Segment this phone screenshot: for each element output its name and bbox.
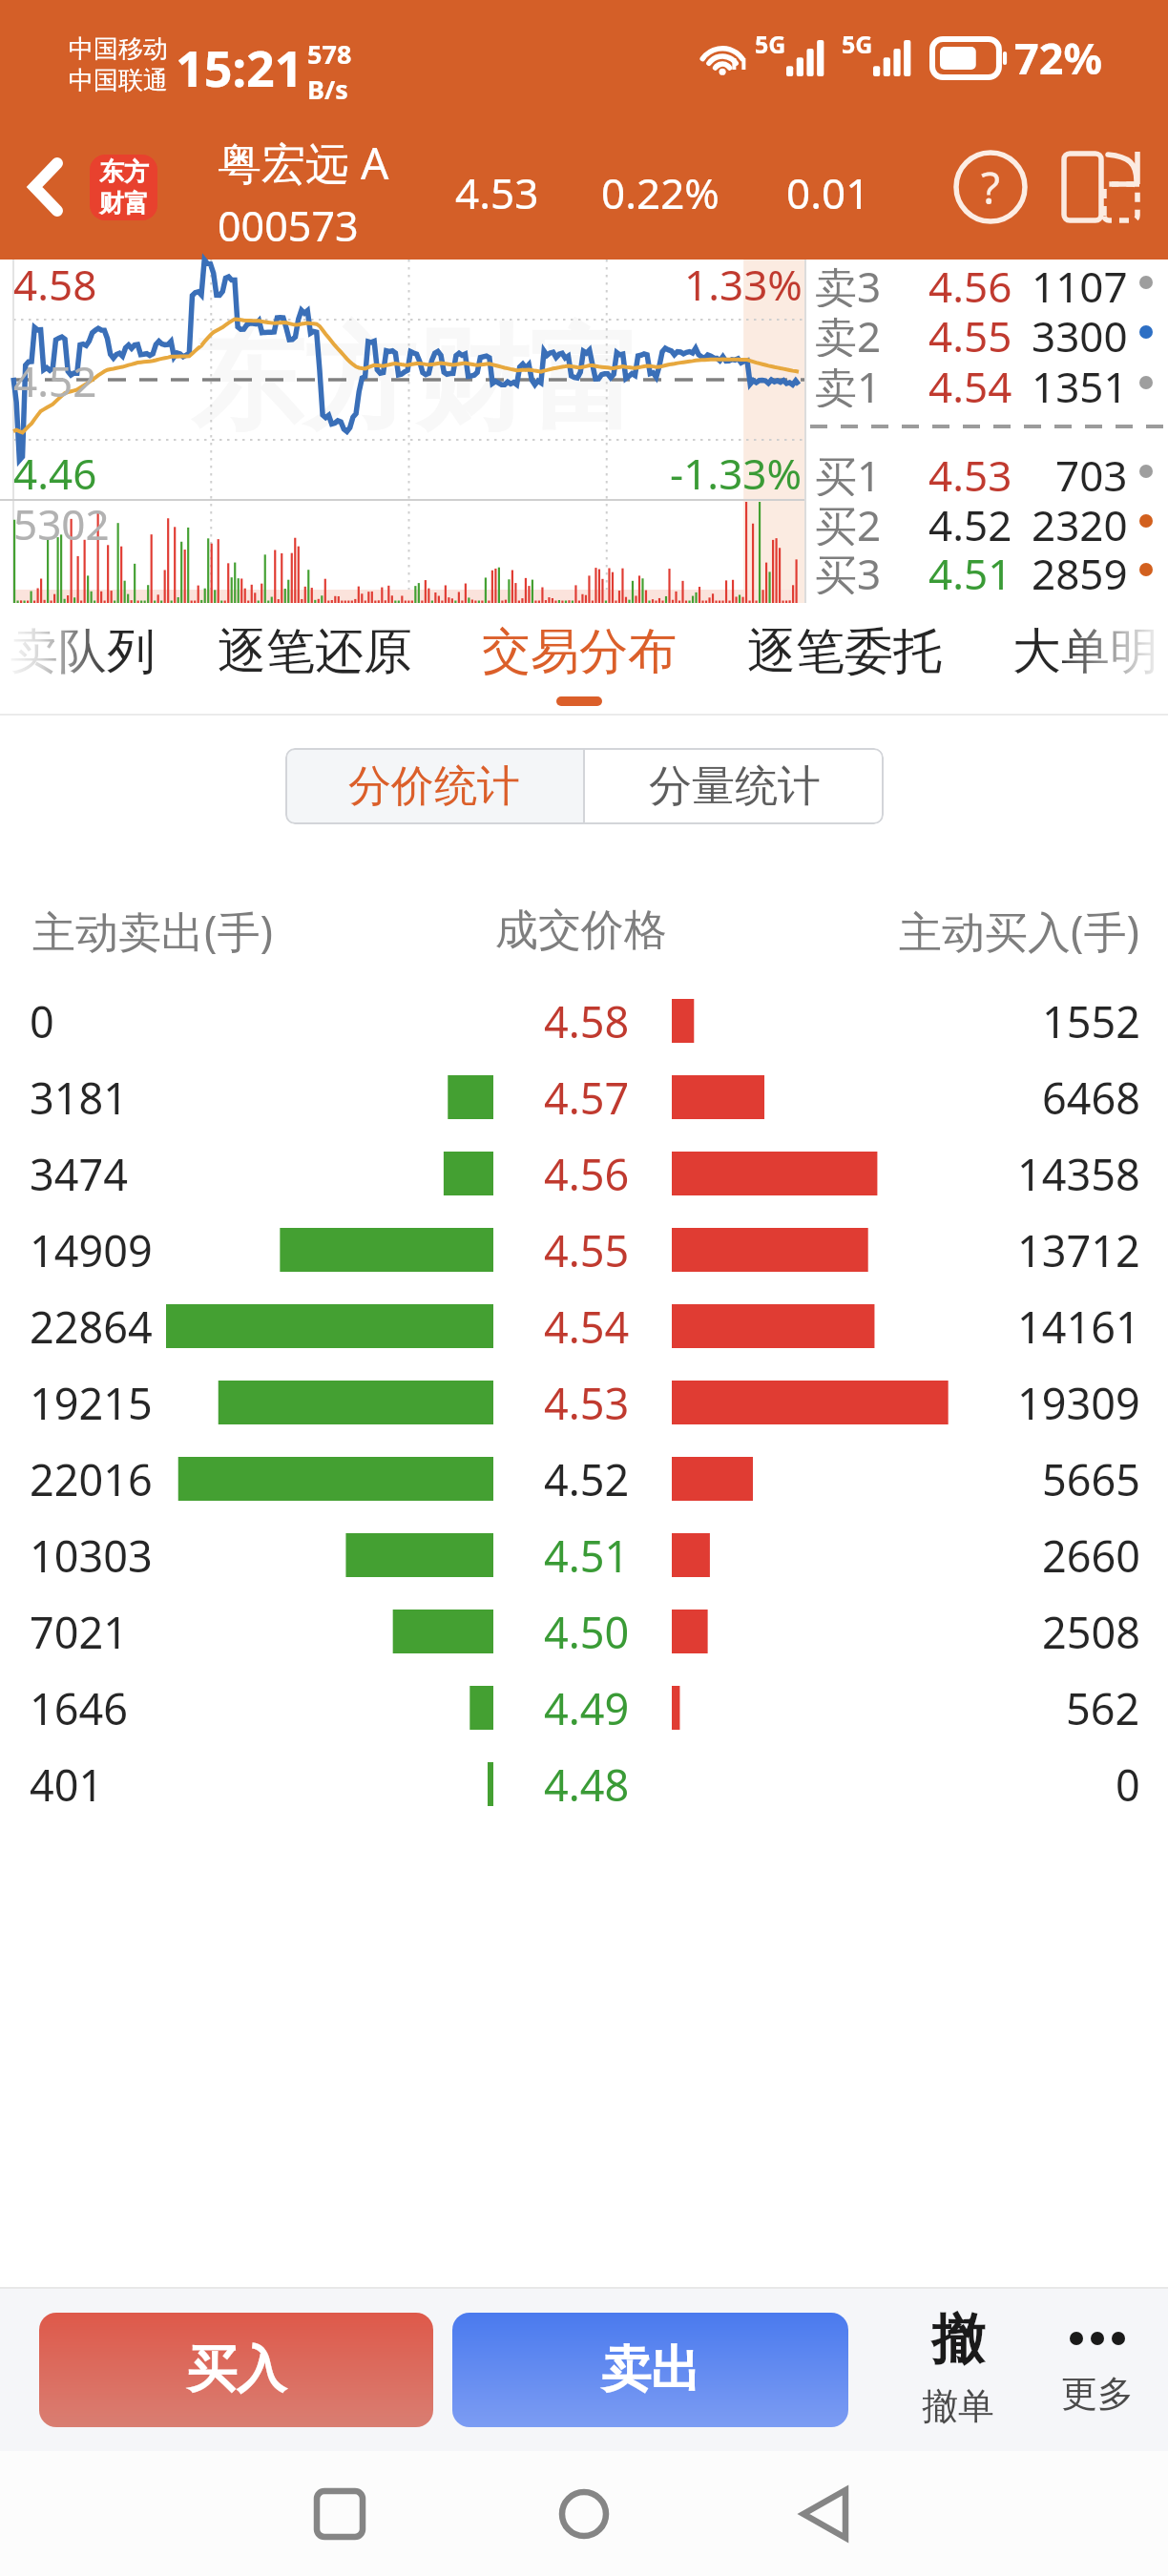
button[interactable]: 3181 — [0, 1059, 1168, 1135]
staticText: 4.53 — [544, 1374, 630, 1432]
staticText: 东方 — [99, 156, 149, 188]
staticText: 4.52 — [544, 1450, 630, 1508]
button[interactable]: 大单明 — [993, 603, 1168, 716]
button[interactable]: 卖1 — [806, 358, 1168, 407]
staticText: 1351 — [1032, 358, 1128, 407]
staticText: 4.58 — [544, 992, 630, 1050]
staticText: 5302 — [13, 495, 110, 552]
staticText: 578 — [307, 36, 352, 72]
button[interactable]: Home — [522, 2451, 646, 2576]
button[interactable]: Recents — [278, 2451, 402, 2576]
button[interactable]: 更多 — [1031, 2306, 1164, 2417]
staticText: 中国联通 — [69, 65, 168, 96]
staticText: 分量统计 — [649, 759, 821, 814]
button[interactable]: Help — [945, 114, 1036, 260]
staticText: 财富 — [99, 188, 149, 219]
button[interactable]: 401 — [0, 1746, 1168, 1822]
button[interactable]: Split screen — [1048, 114, 1157, 260]
staticText: 5G — [755, 28, 786, 60]
button[interactable]: Back — [4, 114, 88, 260]
staticText: 4.46 — [13, 445, 97, 502]
button[interactable]: 1646 — [0, 1670, 1168, 1746]
staticText: ? — [981, 157, 1000, 218]
staticText: 4.54 — [928, 358, 1012, 407]
staticText: 成交价格 — [495, 904, 667, 958]
button[interactable]: 卖2 — [806, 307, 1168, 357]
staticText: 22016 — [30, 1450, 153, 1508]
staticText: 2320 — [1032, 496, 1128, 546]
staticText: 逐笔委托 — [747, 621, 942, 682]
staticText: 卖1 — [815, 358, 882, 407]
staticText: 4.51 — [928, 545, 1012, 594]
staticText: 卖2 — [815, 307, 882, 357]
button[interactable]: 卖出 — [452, 2313, 848, 2427]
staticText: 4.50 — [544, 1603, 630, 1661]
staticText: 4.51 — [544, 1527, 630, 1585]
staticText: 1.33% — [684, 256, 803, 313]
staticText: 4.49 — [544, 1679, 630, 1737]
button[interactable]: 7021 — [0, 1593, 1168, 1670]
button[interactable]: 19215 — [0, 1364, 1168, 1441]
staticText: 703 — [1055, 447, 1128, 496]
staticText: B/s — [307, 72, 348, 107]
staticText: 4.55 — [544, 1221, 630, 1279]
button[interactable]: 分价统计 — [285, 748, 583, 824]
staticText: 4.54 — [544, 1298, 630, 1356]
button[interactable]: 10303 — [0, 1517, 1168, 1593]
staticText: 2508 — [1042, 1603, 1140, 1661]
staticText: 0.22% — [601, 164, 720, 221]
staticText: 14909 — [30, 1221, 153, 1279]
button[interactable]: 买3 — [806, 545, 1168, 594]
staticText: 东方财富 — [191, 309, 641, 451]
staticText: 4.57 — [544, 1069, 630, 1127]
staticText: 3474 — [30, 1145, 128, 1203]
staticText: 5665 — [1042, 1450, 1140, 1508]
staticText: 分价统计 — [348, 759, 520, 814]
staticText: -1.33% — [670, 445, 803, 502]
button[interactable]: 卖队列 — [0, 603, 174, 716]
staticText: 19309 — [1017, 1374, 1140, 1432]
staticText: 000573 — [218, 197, 359, 254]
staticText: 10303 — [30, 1527, 153, 1585]
staticText: 562 — [1066, 1679, 1140, 1737]
staticText: 3181 — [30, 1069, 128, 1127]
staticText: 粤宏远 A — [218, 133, 389, 193]
staticText: 13712 — [1017, 1221, 1140, 1279]
button[interactable]: 逐笔委托 — [728, 603, 961, 716]
staticText: 401 — [30, 1755, 104, 1814]
button[interactable]: 买入 — [39, 2313, 433, 2427]
staticText: 2660 — [1042, 1527, 1140, 1585]
staticText: 4.58 — [13, 256, 97, 313]
staticText: 卖队列 — [10, 621, 156, 682]
staticText: 15:21 — [176, 33, 303, 101]
staticText: 14161 — [1017, 1298, 1140, 1356]
button[interactable]: 14909 — [0, 1212, 1168, 1288]
button[interactable]: East Money — [90, 155, 157, 220]
staticText: 1552 — [1042, 992, 1140, 1050]
staticText: 14358 — [1017, 1145, 1140, 1203]
staticText: 0 — [30, 992, 54, 1050]
button[interactable]: 0 — [0, 983, 1168, 1059]
button[interactable]: 3474 — [0, 1135, 1168, 1212]
staticText: 中国移动 — [69, 33, 168, 65]
staticText: 主动买入(手) — [899, 902, 1140, 959]
button[interactable]: 逐笔还原 — [198, 603, 431, 716]
staticText: 买1 — [815, 447, 882, 496]
staticText: 4.48 — [544, 1755, 630, 1814]
button[interactable]: Back — [762, 2451, 886, 2576]
button[interactable]: 买1 — [806, 447, 1168, 496]
staticText: 22864 — [30, 1298, 153, 1356]
button[interactable]: 22016 — [0, 1441, 1168, 1517]
button[interactable]: 分量统计 — [585, 748, 884, 824]
staticText: 2859 — [1032, 545, 1128, 594]
button[interactable]: 22864 — [0, 1288, 1168, 1364]
button[interactable]: 卖3 — [806, 258, 1168, 307]
staticText: 撤 — [931, 2306, 985, 2374]
button[interactable]: 交易分布 — [463, 603, 696, 716]
staticText: 主动卖出(手) — [32, 902, 274, 959]
button[interactable]: 买2 — [806, 496, 1168, 546]
staticText: 4.52 — [13, 352, 97, 409]
staticText: 大单明 — [1012, 621, 1158, 682]
button[interactable]: 撤 — [891, 2306, 1025, 2429]
staticText: 0 — [1116, 1755, 1140, 1814]
